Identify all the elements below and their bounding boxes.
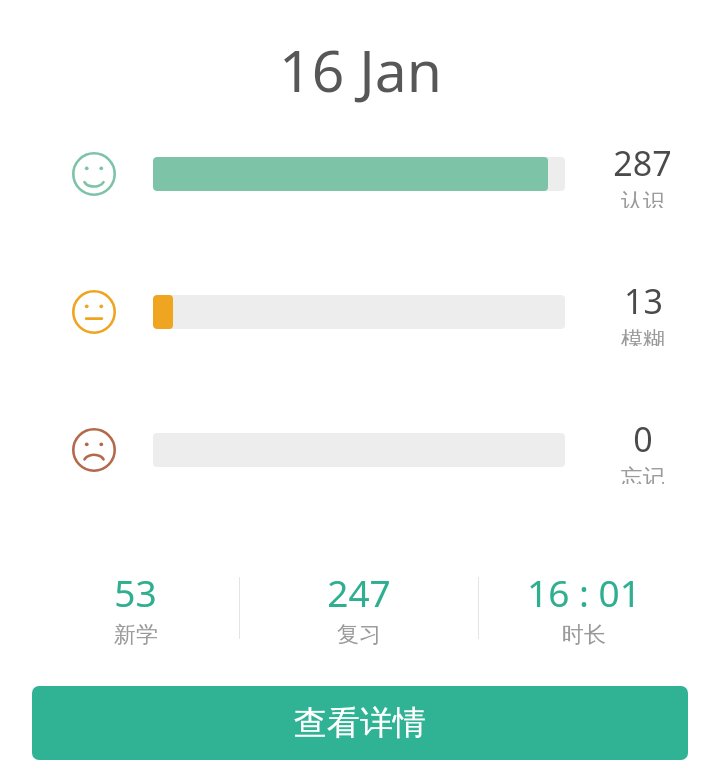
staticText: 新学 (114, 621, 158, 649)
staticText: 53 (114, 567, 157, 617)
staticText: 16 Jan (279, 31, 442, 109)
staticText: 查看详情 (294, 702, 426, 744)
staticText: 0 (633, 416, 653, 462)
button[interactable]: 16 : 01 (479, 558, 688, 658)
staticText: 模糊 (621, 326, 665, 346)
button[interactable]: 查看详情 (32, 686, 688, 760)
button[interactable]: 认识 (0, 140, 720, 208)
staticText: 247 (327, 567, 391, 617)
other: 认识 (72, 152, 116, 196)
button[interactable]: 53 (32, 558, 239, 658)
staticText: 287 (613, 140, 672, 186)
staticText: 认识 (621, 188, 665, 208)
button[interactable]: 模糊 (0, 278, 720, 346)
staticText: 时长 (562, 621, 606, 649)
staticText: 13 (624, 278, 663, 324)
staticText: 16 : 01 (527, 567, 641, 617)
button[interactable]: 247 (240, 558, 478, 658)
other: 忘记 (72, 428, 116, 472)
other: 模糊 (72, 290, 116, 334)
staticText: 复习 (337, 621, 381, 649)
staticText: 忘记 (621, 464, 665, 484)
button[interactable]: 忘记 (0, 416, 720, 484)
